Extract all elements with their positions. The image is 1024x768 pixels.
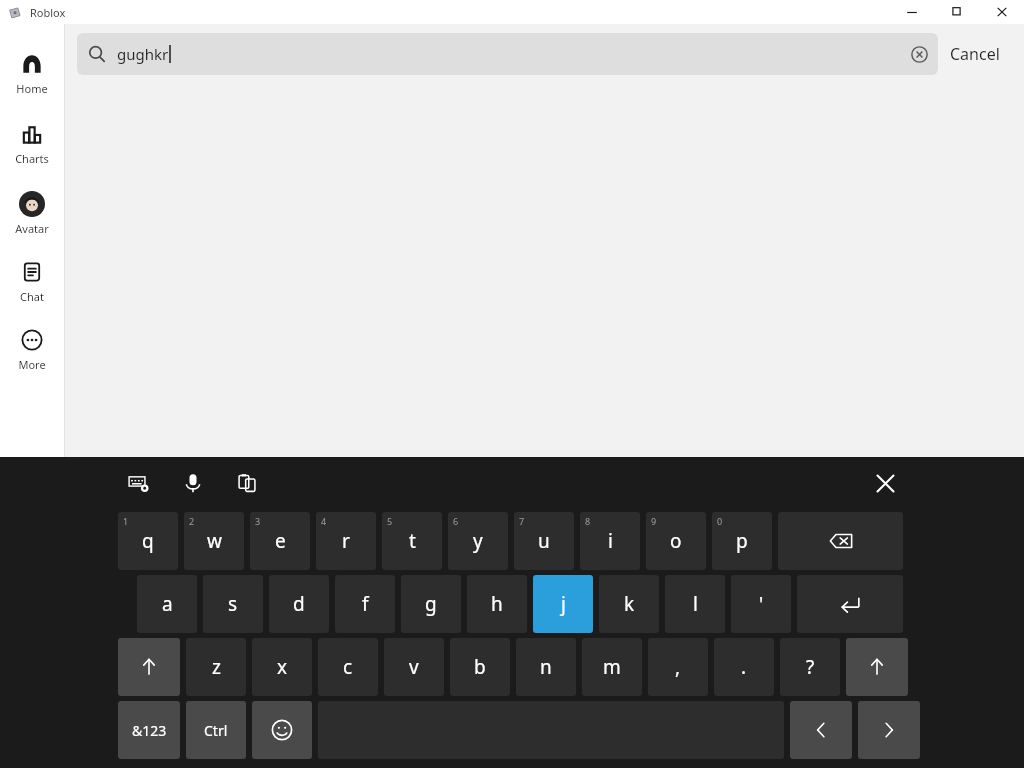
staticText: gughkr bbox=[117, 44, 169, 64]
staticText: l bbox=[693, 591, 698, 617]
button[interactable]: n bbox=[516, 638, 576, 696]
staticText: 8 bbox=[585, 515, 591, 527]
button[interactable]: j bbox=[533, 575, 593, 633]
staticText: u bbox=[538, 528, 550, 554]
staticText: 1 bbox=[123, 515, 129, 527]
staticText: h bbox=[491, 591, 503, 617]
button[interactable]: a bbox=[137, 575, 197, 633]
staticText: r bbox=[342, 528, 350, 554]
button[interactable]: f bbox=[335, 575, 395, 633]
button[interactable]: x bbox=[252, 638, 312, 696]
staticText: 9 bbox=[651, 515, 657, 527]
button[interactable]: Enter bbox=[797, 575, 903, 633]
staticText: k bbox=[624, 591, 635, 617]
staticText: , bbox=[675, 654, 681, 680]
staticText: Home bbox=[16, 81, 48, 96]
button[interactable]: m bbox=[582, 638, 642, 696]
button[interactable]: c bbox=[318, 638, 378, 696]
staticText: 2 bbox=[189, 515, 195, 527]
staticText: z bbox=[212, 654, 221, 680]
button[interactable]: Chat bbox=[0, 258, 64, 304]
button[interactable]: 8 bbox=[580, 512, 640, 570]
staticText: b bbox=[474, 654, 486, 680]
staticText: 4 bbox=[321, 515, 327, 527]
staticText: p bbox=[736, 528, 748, 554]
button[interactable]: Move cursor right bbox=[858, 701, 920, 759]
button[interactable]: Move cursor left bbox=[790, 701, 852, 759]
staticText: q bbox=[142, 528, 154, 554]
button[interactable]: k bbox=[599, 575, 659, 633]
button[interactable]: b bbox=[450, 638, 510, 696]
staticText: j bbox=[561, 591, 566, 617]
button[interactable]: Home bbox=[0, 50, 64, 96]
button[interactable]: gughkr bbox=[77, 33, 938, 75]
staticText: More bbox=[18, 357, 46, 372]
button[interactable]: Keyboard settings bbox=[122, 466, 156, 500]
button[interactable]: d bbox=[269, 575, 329, 633]
button[interactable]: Voice input bbox=[176, 466, 210, 500]
staticText: 7 bbox=[519, 515, 525, 527]
button[interactable]: Backspace bbox=[778, 512, 903, 570]
button[interactable]: s bbox=[203, 575, 263, 633]
button[interactable]: 3 bbox=[250, 512, 310, 570]
button[interactable]: Close keyboard bbox=[868, 466, 902, 500]
staticText: Avatar bbox=[15, 221, 49, 236]
staticText: i bbox=[608, 528, 613, 554]
button[interactable]: &123 bbox=[118, 701, 180, 759]
staticText: 0 bbox=[717, 515, 723, 527]
staticText: t bbox=[409, 528, 416, 554]
staticText: 6 bbox=[453, 515, 459, 527]
staticText: s bbox=[228, 591, 238, 617]
staticText: c bbox=[343, 654, 353, 680]
button[interactable]: 7 bbox=[514, 512, 574, 570]
button[interactable]: 6 bbox=[448, 512, 508, 570]
button[interactable]: Clipboard bbox=[230, 466, 264, 500]
button[interactable]: ' bbox=[731, 575, 791, 633]
button[interactable]: . bbox=[714, 638, 774, 696]
staticText: x bbox=[277, 654, 288, 680]
staticText: &123 bbox=[132, 721, 167, 740]
button[interactable]: 2 bbox=[184, 512, 244, 570]
button[interactable]: Avatar bbox=[0, 190, 64, 236]
button[interactable]: Cancel bbox=[938, 33, 1012, 75]
staticText: v bbox=[409, 654, 419, 680]
button[interactable]: Shift bbox=[846, 638, 908, 696]
button[interactable]: Maximize bbox=[934, 0, 979, 24]
staticText: Charts bbox=[15, 151, 49, 166]
button[interactable]: 0 bbox=[712, 512, 772, 570]
staticText: g bbox=[425, 591, 437, 617]
button[interactable]: 1 bbox=[118, 512, 178, 570]
button[interactable]: Close bbox=[979, 0, 1024, 24]
button[interactable]: , bbox=[648, 638, 708, 696]
button[interactable]: z bbox=[186, 638, 246, 696]
button[interactable]: ? bbox=[780, 638, 840, 696]
button[interactable]: Ctrl bbox=[186, 701, 246, 759]
staticText: . bbox=[741, 654, 747, 680]
button[interactable]: Charts bbox=[0, 120, 64, 166]
button[interactable]: 9 bbox=[646, 512, 706, 570]
button[interactable]: Emoji bbox=[252, 701, 312, 759]
staticText: ? bbox=[806, 654, 815, 680]
staticText: Chat bbox=[20, 289, 44, 304]
staticText: d bbox=[293, 591, 305, 617]
staticText: o bbox=[670, 528, 682, 554]
button[interactable]: g bbox=[401, 575, 461, 633]
staticText: 3 bbox=[255, 515, 261, 527]
button[interactable]: 5 bbox=[382, 512, 442, 570]
staticText: y bbox=[473, 528, 483, 554]
button[interactable]: 4 bbox=[316, 512, 376, 570]
staticText: ' bbox=[759, 591, 764, 617]
staticText: Ctrl bbox=[204, 721, 228, 740]
button[interactable]: Minimize bbox=[889, 0, 934, 24]
staticText: Roblox bbox=[30, 5, 66, 20]
staticText: e bbox=[275, 528, 286, 554]
button[interactable]: More bbox=[0, 326, 64, 372]
button[interactable]: Shift bbox=[118, 638, 180, 696]
staticText: w bbox=[207, 528, 222, 554]
button[interactable]: l bbox=[665, 575, 725, 633]
button[interactable]: h bbox=[467, 575, 527, 633]
button[interactable]: Clear search bbox=[902, 37, 936, 71]
staticText: m bbox=[603, 654, 621, 680]
button[interactable]: v bbox=[384, 638, 444, 696]
